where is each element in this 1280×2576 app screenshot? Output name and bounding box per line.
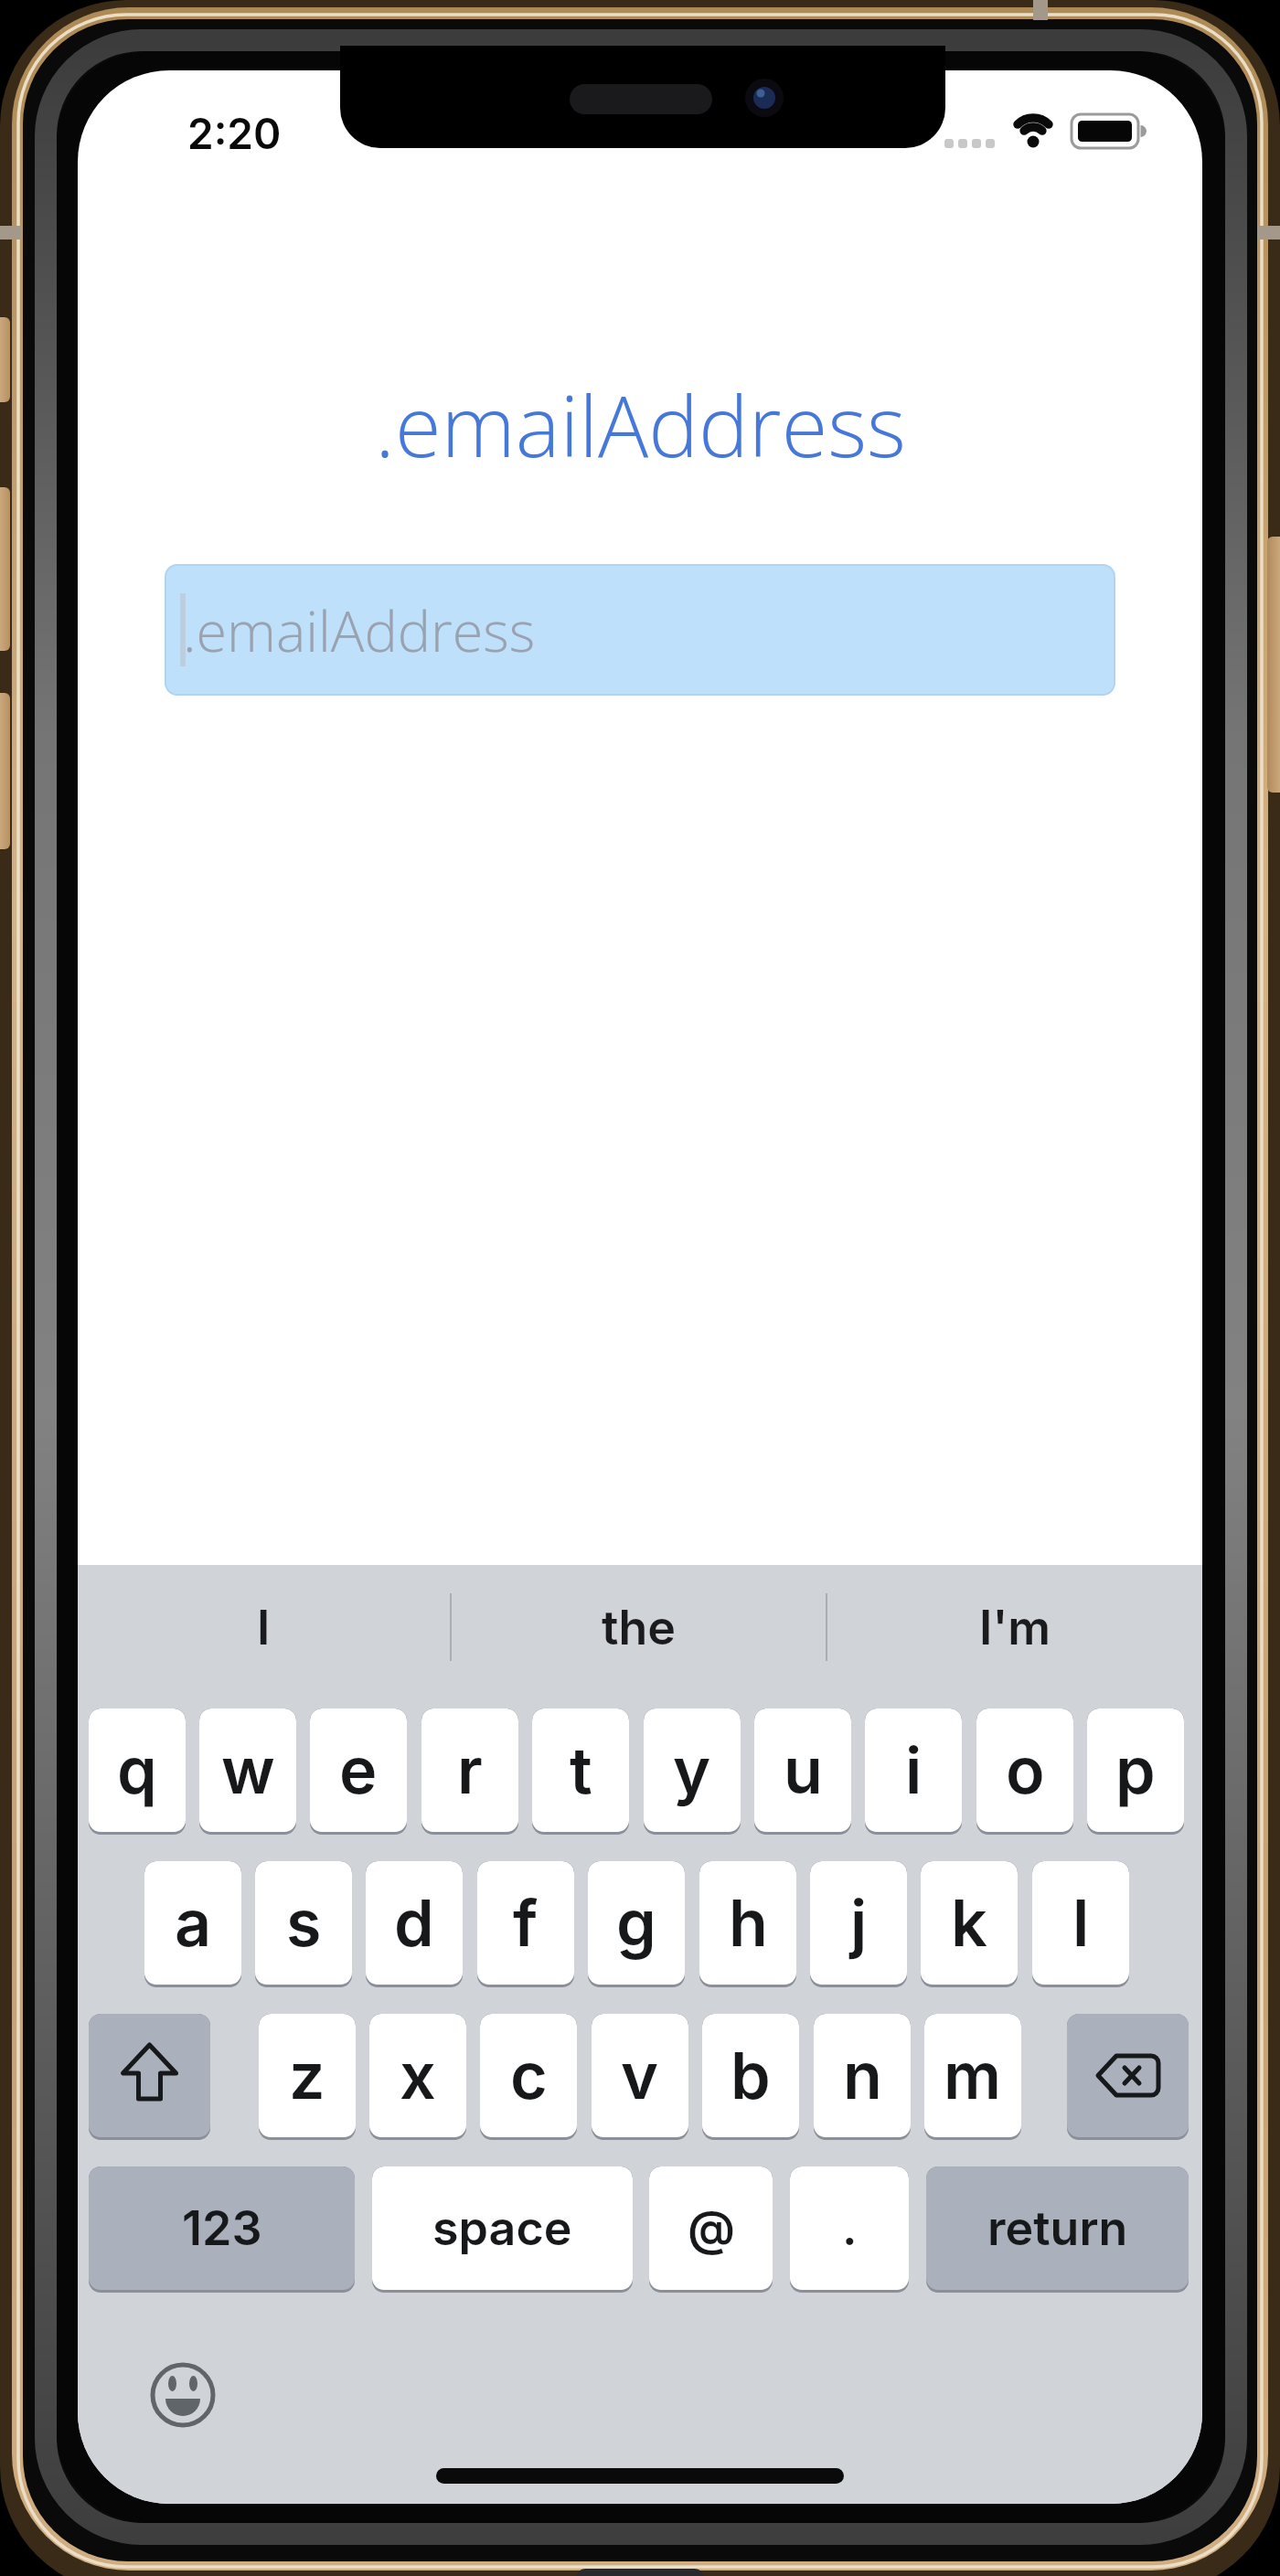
button[interactable]: s — [255, 1861, 352, 1987]
staticText: space — [432, 2199, 572, 2257]
button[interactable]: o — [976, 1708, 1073, 1835]
staticText: c — [510, 2037, 548, 2114]
staticText: r — [457, 1731, 483, 1809]
staticText: q — [117, 1731, 157, 1809]
button[interactable]: c — [480, 2014, 577, 2140]
button[interactable]: i — [865, 1708, 962, 1835]
staticText: 123 — [182, 2199, 262, 2257]
button[interactable]: e — [310, 1708, 407, 1835]
button[interactable] — [1067, 2014, 1189, 2140]
staticText: e — [339, 1731, 378, 1809]
button[interactable]: return — [926, 2166, 1189, 2293]
staticText: z — [289, 2037, 325, 2114]
button[interactable]: space — [372, 2166, 633, 2293]
staticText: h — [729, 1884, 768, 1962]
button[interactable]: m — [924, 2014, 1021, 2140]
staticText: f — [513, 1884, 539, 1962]
staticText: .emailAddress — [375, 367, 906, 482]
button[interactable]: p — [1087, 1708, 1184, 1835]
button[interactable]: u — [754, 1708, 851, 1835]
staticText: o — [1006, 1731, 1045, 1809]
staticText: y — [673, 1731, 711, 1809]
staticText: t — [570, 1731, 592, 1809]
button[interactable]: the — [452, 1593, 826, 1661]
button[interactable]: I — [78, 1593, 450, 1661]
staticText: i — [905, 1731, 923, 1809]
staticText: n — [843, 2037, 882, 2114]
button[interactable]: z — [259, 2014, 356, 2140]
button[interactable]: v — [592, 2014, 688, 2140]
staticText: . — [842, 2199, 858, 2257]
button[interactable]: k — [921, 1861, 1018, 1987]
button[interactable] — [89, 2014, 210, 2140]
staticText: @ — [688, 2199, 735, 2257]
staticText: a — [175, 1884, 212, 1962]
staticText: u — [784, 1731, 823, 1809]
staticText: j — [850, 1884, 868, 1962]
button[interactable]: n — [814, 2014, 911, 2140]
button[interactable]: j — [810, 1861, 907, 1987]
staticText: return — [987, 2199, 1128, 2257]
button[interactable]: r — [421, 1708, 518, 1835]
staticText: I'm — [979, 1599, 1051, 1656]
button[interactable]: t — [532, 1708, 629, 1835]
staticText: I — [257, 1599, 271, 1656]
button[interactable]: . — [790, 2166, 909, 2293]
button[interactable]: x — [369, 2014, 466, 2140]
staticText: m — [944, 2037, 1002, 2114]
button[interactable]: .emailAddress — [165, 564, 1115, 696]
button[interactable]: I'm — [827, 1593, 1202, 1661]
staticText: .emailAddress — [183, 592, 536, 668]
button[interactable]: a — [144, 1861, 241, 1987]
staticText: p — [1115, 1731, 1156, 1809]
staticText: l — [1072, 1884, 1090, 1962]
button[interactable]: @ — [649, 2166, 773, 2293]
staticText: d — [394, 1884, 434, 1962]
staticText: g — [616, 1884, 656, 1962]
staticText: x — [400, 2037, 436, 2114]
staticText: w — [221, 1731, 275, 1809]
button[interactable]: l — [1032, 1861, 1129, 1987]
staticText: v — [621, 2037, 659, 2114]
button[interactable]: 123 — [89, 2166, 355, 2293]
button[interactable]: b — [702, 2014, 799, 2140]
button[interactable]: h — [699, 1861, 796, 1987]
button[interactable]: y — [644, 1708, 741, 1835]
button[interactable]: d — [366, 1861, 463, 1987]
staticText: k — [951, 1884, 987, 1962]
button[interactable]: q — [89, 1708, 186, 1835]
button[interactable] — [150, 2362, 216, 2428]
staticText: the — [602, 1599, 677, 1656]
staticText: b — [731, 2037, 771, 2114]
staticText: s — [286, 1884, 322, 1962]
staticText: 2:20 — [187, 108, 282, 155]
button[interactable]: g — [588, 1861, 685, 1987]
button[interactable]: w — [199, 1708, 296, 1835]
button[interactable]: f — [477, 1861, 574, 1987]
